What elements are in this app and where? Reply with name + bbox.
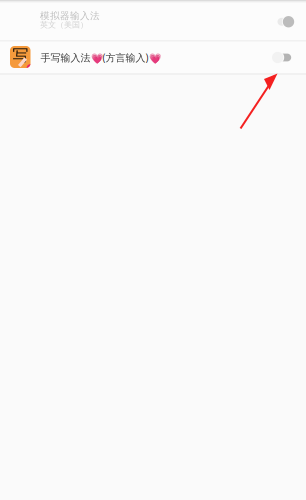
- staticText: 英文（美国）: [40, 20, 88, 30]
- button[interactable]: 模拟器输入法: [0, 3, 306, 40]
- staticText: 模拟器输入法: [40, 10, 100, 22]
- staticText: 手写输入法💗(方言输入)💗: [40, 51, 160, 64]
- button[interactable]: 写: [0, 41, 306, 73]
- staticText: 写: [13, 45, 29, 66]
